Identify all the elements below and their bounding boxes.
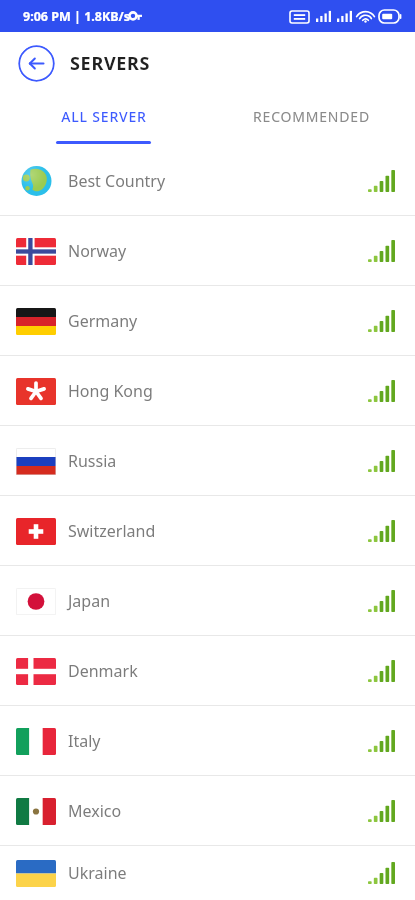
button[interactable]: Hong Kong (0, 356, 415, 425)
other: Signal strength (368, 660, 395, 682)
button[interactable]: Russia (0, 426, 415, 495)
staticText: SERVERS (70, 51, 151, 76)
staticText: Best Country (68, 170, 166, 192)
staticText: Italy (68, 730, 101, 752)
other: Signal strength (368, 450, 395, 472)
other: Signal strength (368, 240, 395, 262)
other: Signal strength (368, 590, 395, 612)
staticText: Germany (68, 310, 138, 332)
button[interactable]: Norway (0, 216, 415, 285)
button[interactable]: Germany (0, 286, 415, 355)
staticText: RECOMMENDED (253, 107, 370, 126)
button[interactable]: RECOMMENDED (207, 94, 415, 146)
other: Signal strength (368, 380, 395, 402)
other: Signal strength (368, 310, 395, 332)
staticText: Hong Kong (68, 380, 153, 402)
other: Signal strength (368, 520, 395, 542)
staticText: Switzerland (68, 520, 156, 542)
button[interactable]: Mexico (0, 776, 415, 845)
staticText: Denmark (68, 660, 138, 682)
button[interactable]: Back (18, 45, 55, 82)
other: Signal strength (368, 862, 395, 884)
button[interactable]: ALL SERVER (0, 94, 207, 146)
button[interactable]: Italy (0, 706, 415, 775)
staticText: ALL SERVER (61, 107, 147, 126)
button[interactable]: Ukraine (0, 846, 415, 900)
button[interactable]: Japan (0, 566, 415, 635)
staticText: Russia (68, 450, 117, 472)
other: Signal strength (368, 170, 395, 192)
button[interactable]: Denmark (0, 636, 415, 705)
button[interactable]: Best Country (0, 146, 415, 215)
staticText: 9:06 PM | 1.8KB/s (23, 8, 131, 25)
other: Signal strength (368, 800, 395, 822)
button[interactable]: Switzerland (0, 496, 415, 565)
staticText: Mexico (68, 800, 122, 822)
staticText: Norway (68, 240, 127, 262)
staticText: Japan (68, 590, 111, 612)
other: Signal strength (368, 730, 395, 752)
staticText: Ukraine (68, 862, 127, 884)
